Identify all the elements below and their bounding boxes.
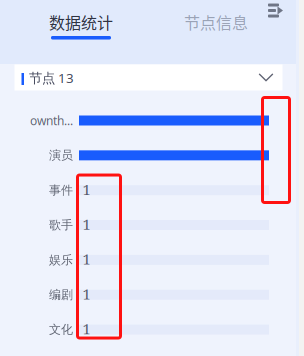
staticText: 1 <box>82 179 90 199</box>
staticText: 节点 13 <box>29 69 74 87</box>
staticText: 事件 <box>49 183 73 197</box>
staticText: 歌手 <box>49 218 73 232</box>
staticText: 娱乐 <box>49 252 73 267</box>
staticText: 节点信息 <box>184 10 248 34</box>
staticText: 1 <box>82 214 90 234</box>
button[interactable]: Sort order <box>268 3 290 25</box>
button[interactable]: 节点 13 <box>14 64 282 90</box>
staticText: ownth... <box>30 112 73 128</box>
staticText: 演员 <box>49 148 73 163</box>
staticText: 1 <box>82 249 90 269</box>
staticText: 数据统计 <box>49 10 113 34</box>
button[interactable]: 数据统计 <box>36 4 126 40</box>
staticText: 1 <box>82 284 90 304</box>
staticText: 编剧 <box>49 287 73 302</box>
staticText: 1 <box>82 319 90 339</box>
button[interactable]: 节点信息 <box>171 4 261 40</box>
staticText: 文化 <box>49 322 73 337</box>
